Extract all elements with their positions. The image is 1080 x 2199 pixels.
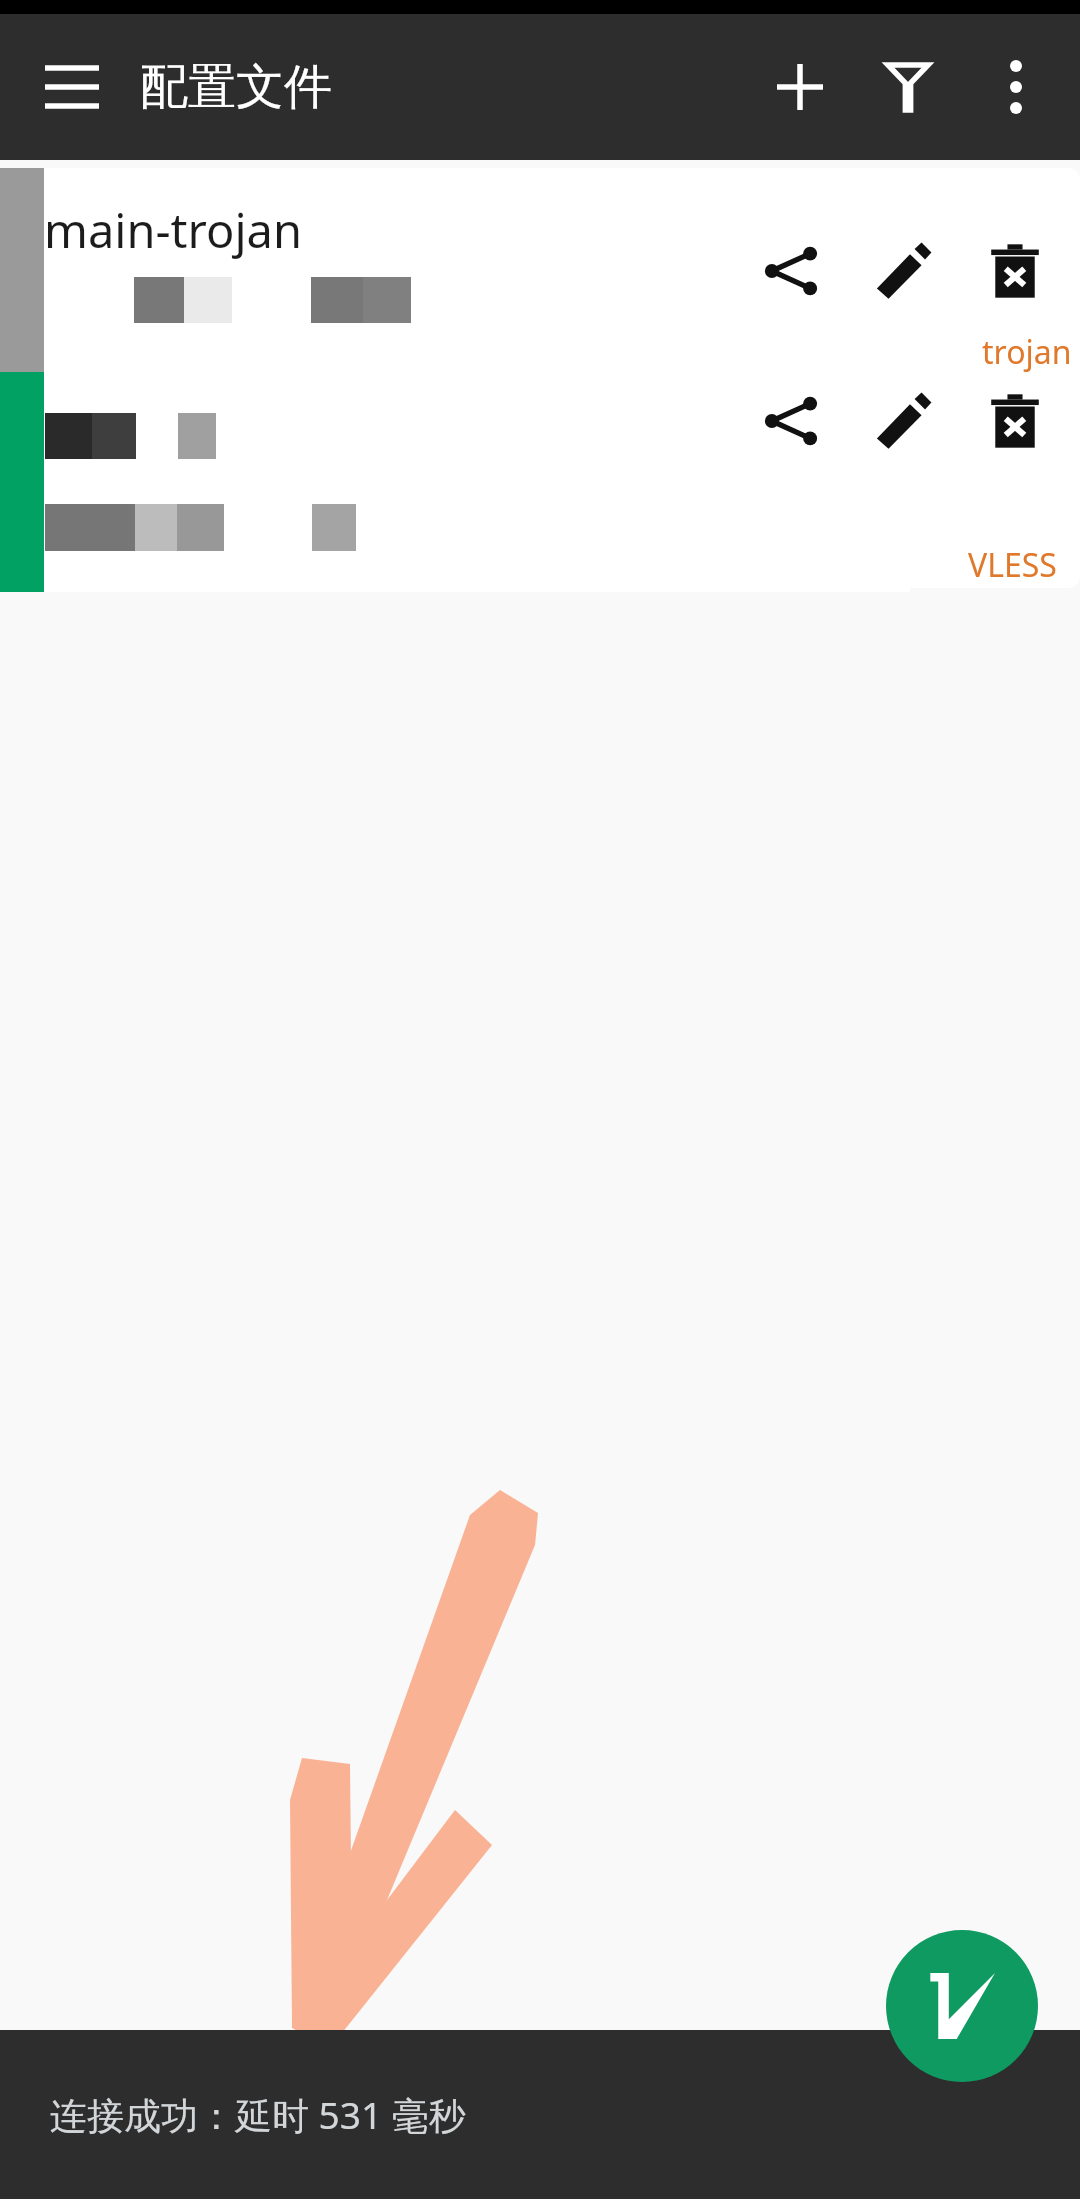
- button[interactable]: [30, 258, 1080, 588]
- button[interactable]: Edit: [847, 215, 959, 327]
- staticText: main-trojan: [44, 198, 303, 262]
- button[interactable]: Delete: [959, 215, 1071, 327]
- button[interactable]: More options: [962, 33, 1070, 141]
- button[interactable]: Edit: [847, 365, 959, 477]
- button[interactable]: Share: [735, 365, 847, 477]
- button[interactable]: Filter: [854, 33, 962, 141]
- button[interactable]: Add profile: [746, 33, 854, 141]
- staticText: 连接成功：延时 531 毫秒: [50, 2089, 466, 2140]
- button[interactable]: Connect: [886, 1930, 1038, 2082]
- button[interactable]: Delete: [959, 365, 1071, 477]
- button[interactable]: Menu: [20, 35, 124, 139]
- button[interactable]: Share: [735, 215, 847, 327]
- staticText: 配置文件: [140, 57, 332, 117]
- staticText: VLESS: [968, 543, 1057, 587]
- button[interactable]: [30, 168, 1080, 412]
- staticText: trojan: [982, 330, 1072, 374]
